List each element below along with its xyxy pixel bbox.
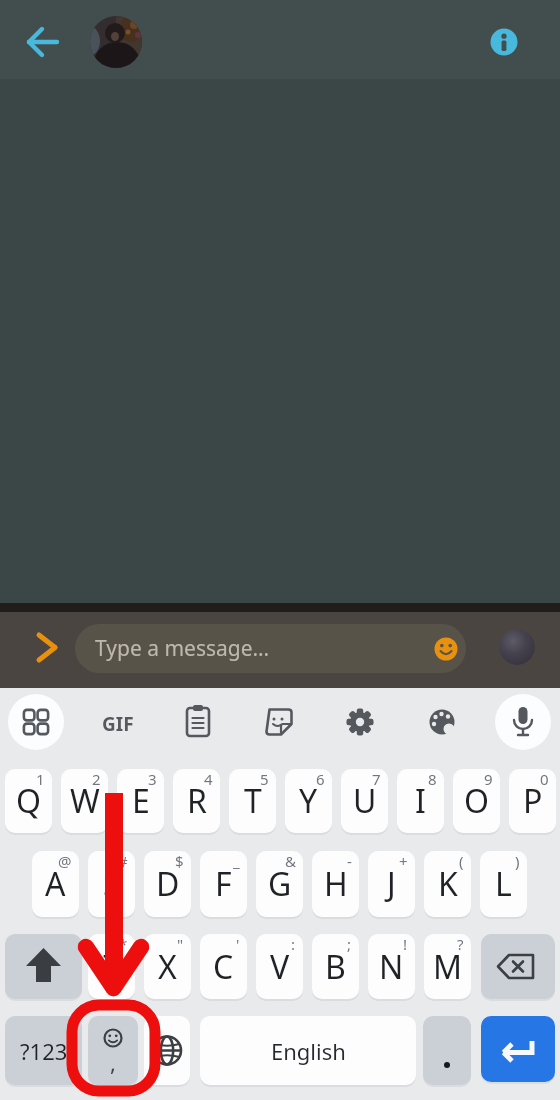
button[interactable]: C [200,934,247,999]
button[interactable]: M [424,934,471,999]
button[interactable]: U [341,769,388,833]
button[interactable]: L [480,851,527,917]
button[interactable] [8,694,64,750]
button[interactable]: R [173,769,220,833]
button[interactable] [255,698,303,746]
staticText: Z [102,945,121,989]
staticText: J [387,862,396,906]
staticText: G [268,862,292,906]
staticText: F [215,862,232,906]
staticText: 6 [316,769,325,789]
staticText: 8 [428,769,437,789]
staticText: 7 [372,769,381,789]
button[interactable] [484,22,524,62]
staticText: Q [16,779,41,823]
staticText: ? [457,934,464,954]
button[interactable]: B [312,934,359,999]
button[interactable]: F [200,851,247,917]
staticText: * [119,934,128,954]
staticText: : [291,934,296,954]
button[interactable]: D [144,851,191,917]
staticText: Y [299,779,318,823]
staticText: @ [58,851,72,871]
button[interactable] [336,698,384,746]
staticText: U [353,779,377,823]
staticText: 9 [484,769,493,789]
staticText: ' [236,934,240,954]
button[interactable]: ?123 [5,1016,82,1085]
button[interactable] [499,629,535,665]
staticText: L [495,862,512,906]
button[interactable] [423,1016,471,1085]
staticText: X [158,945,177,989]
staticText: $ [175,851,184,871]
staticText: " [177,934,184,954]
staticText: + [399,851,408,871]
staticText: A [45,862,66,906]
staticText: V [270,945,290,989]
staticText: 2 [92,769,101,789]
staticText: S [103,862,121,906]
button[interactable] [144,1016,190,1085]
staticText: ) [515,851,520,871]
button[interactable]: N [368,934,415,999]
staticText: 4 [204,769,213,789]
button[interactable] [20,20,64,64]
staticText: English [271,1036,346,1066]
button[interactable]: K [424,851,471,917]
staticText: GIF [102,711,134,735]
button[interactable]: E [117,769,164,833]
staticText: C [213,945,234,989]
staticText: H [324,862,348,906]
button[interactable]: Type a message… [75,624,466,673]
staticText: T [244,779,262,823]
button[interactable] [5,934,82,999]
staticText: K [438,862,458,906]
button[interactable]: A [32,851,79,917]
button[interactable]: H [312,851,359,917]
staticText: , [110,1047,116,1077]
staticText: ?123 [20,1036,68,1066]
staticText: ; [347,934,352,954]
button[interactable] [92,698,140,746]
button[interactable] [90,16,142,68]
button[interactable]: S [88,851,135,917]
button[interactable]: English [200,1016,416,1085]
staticText: - [347,851,352,871]
staticText: B [325,945,346,989]
button[interactable]: I [397,769,444,833]
staticText: Type a message… [95,634,270,663]
button[interactable]: Y [285,769,332,833]
button[interactable]: , [88,1016,138,1085]
staticText: O [464,779,489,823]
staticText: R [187,779,207,823]
button[interactable] [495,694,551,750]
staticText: _ [233,851,240,871]
button[interactable]: Q [5,769,52,833]
staticText: 1 [36,769,45,789]
staticText: ! [403,934,408,954]
button[interactable]: W [61,769,108,833]
staticText: & [285,851,296,871]
staticText: P [523,779,543,823]
button[interactable]: X [144,934,191,999]
staticText: D [156,862,180,906]
staticText: 5 [260,769,269,789]
button[interactable]: V [256,934,303,999]
staticText: W [70,779,100,823]
staticText: # [118,851,128,871]
button[interactable]: O [453,769,500,833]
button[interactable] [481,1016,555,1082]
button[interactable] [28,628,66,668]
button[interactable]: J [368,851,415,917]
staticText: 3 [148,769,157,789]
staticText: M [433,945,463,989]
button[interactable]: G [256,851,303,917]
button[interactable] [481,934,555,999]
button[interactable] [418,698,466,746]
button[interactable] [174,698,222,746]
button[interactable]: T [229,769,276,833]
button[interactable]: P [509,769,556,833]
staticText: I [415,779,426,823]
button[interactable]: Z [88,934,135,999]
